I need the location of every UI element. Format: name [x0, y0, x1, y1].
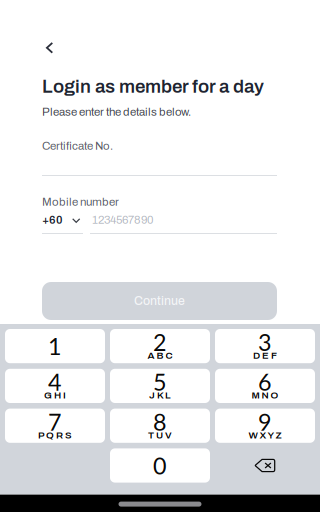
staticText: M N O	[251, 390, 278, 401]
staticText: Please enter the details below.	[42, 106, 191, 118]
button[interactable]: 8	[110, 409, 210, 443]
staticText: 0	[153, 451, 167, 479]
staticText: 6	[258, 368, 272, 396]
staticText: 8	[153, 408, 167, 436]
button[interactable]: Continue	[42, 282, 277, 320]
staticText: W X Y Z	[248, 430, 281, 440]
button[interactable]: 1	[5, 329, 105, 363]
staticText: Mobile number	[42, 196, 119, 208]
staticText: 7	[48, 408, 62, 436]
staticText: Login as member for a day	[42, 76, 264, 97]
staticText: D E F	[253, 350, 277, 361]
staticText: +60	[42, 214, 63, 226]
button[interactable]: 6	[215, 369, 315, 403]
button[interactable]: 2	[110, 329, 210, 363]
staticText: 1	[48, 332, 62, 360]
button[interactable]: 3	[215, 329, 315, 363]
button[interactable]: Back	[30, 36, 66, 66]
staticText: G H I	[44, 390, 66, 401]
staticText: 2	[153, 328, 167, 356]
staticText: Certificate No.	[42, 140, 113, 152]
staticText: 3	[258, 328, 272, 356]
staticText: 1234567890	[92, 214, 153, 226]
staticText: 5	[153, 368, 167, 396]
button[interactable]: +60	[42, 212, 82, 234]
staticText: P Q R S	[38, 430, 72, 440]
staticText: 9	[258, 408, 272, 436]
staticText: T U V	[148, 430, 172, 440]
staticText: A B C	[147, 350, 172, 361]
button[interactable]: Delete	[215, 448, 315, 483]
staticText: 4	[48, 368, 62, 396]
staticText: J K L	[149, 390, 171, 401]
button[interactable]: 9	[215, 409, 315, 443]
button[interactable]: 0	[110, 448, 210, 483]
button[interactable]: 4	[5, 369, 105, 403]
button[interactable]: 7	[5, 409, 105, 443]
staticText: Continue	[134, 294, 185, 308]
button[interactable]: 5	[110, 369, 210, 403]
